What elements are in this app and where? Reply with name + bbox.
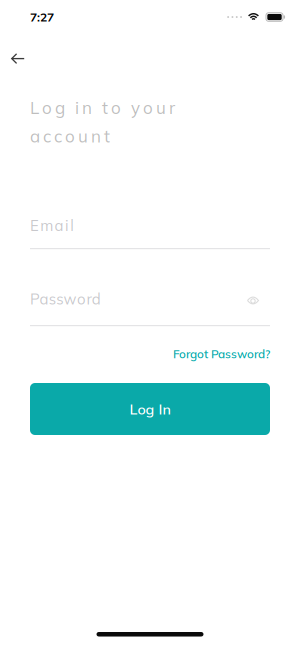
staticText: Log in to your [30, 97, 175, 118]
button[interactable]: Log In [30, 383, 270, 435]
button[interactable]: Show password [243, 292, 263, 309]
staticText: Password [30, 289, 101, 308]
staticText: Log In [129, 400, 170, 418]
staticText: 7:27 [30, 9, 54, 25]
staticText: Email [30, 216, 74, 235]
button[interactable]: Back [7, 47, 29, 70]
staticText: account [30, 125, 110, 147]
staticText: Forgot Password? [173, 346, 270, 361]
button[interactable]: Forgot Password? [173, 346, 270, 361]
